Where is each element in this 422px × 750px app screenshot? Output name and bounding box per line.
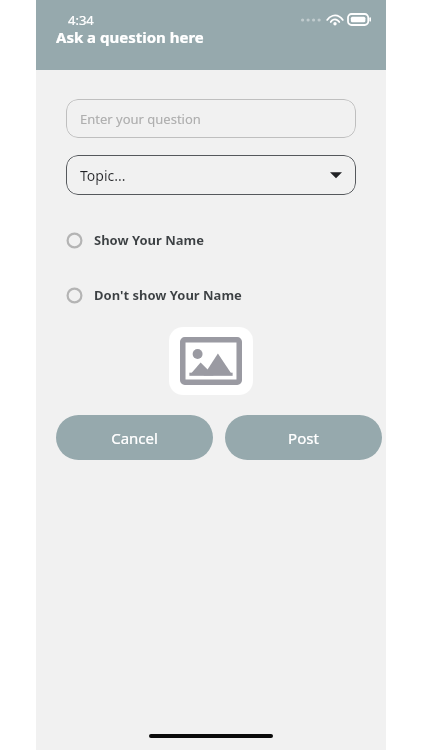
staticText: Post	[288, 428, 319, 448]
button[interactable]: Add image	[169, 327, 253, 395]
button[interactable]: Topic...	[66, 155, 356, 195]
button[interactable]: Don't show Your Name	[36, 284, 386, 306]
staticText: Don't show Your Name	[94, 286, 242, 304]
staticText: Enter your question	[80, 110, 201, 128]
staticText: Cancel	[111, 428, 158, 448]
staticText: Topic...	[80, 166, 126, 185]
button[interactable]: Show Your Name	[36, 229, 386, 251]
button[interactable]: Enter your question	[66, 99, 356, 138]
staticText: Ask a question here	[56, 27, 204, 47]
button[interactable]: Post	[225, 415, 382, 460]
button[interactable]: Cancel	[56, 415, 213, 460]
staticText: Show Your Name	[94, 231, 205, 249]
staticText: 4:34	[68, 11, 94, 29]
